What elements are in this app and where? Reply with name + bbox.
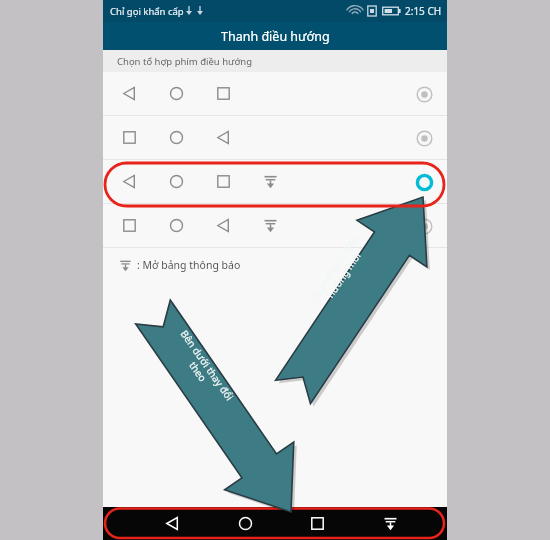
button[interactable]	[103, 116, 447, 159]
button[interactable]: Home	[228, 507, 262, 540]
button[interactable]: Recent apps	[300, 507, 334, 540]
button[interactable]: Open notifications	[373, 507, 407, 540]
staticText: Chọn tổ hợp phím điều hướng	[117, 55, 253, 68]
staticText: Chỉ gọi khẩn cấp	[110, 5, 184, 18]
staticText: 2:15 CH	[405, 4, 442, 18]
staticText: : Mở bảng thông báo	[137, 258, 241, 272]
button[interactable]	[103, 72, 447, 115]
staticText: Chọn thanh điều hướng mới	[306, 232, 371, 312]
staticText: Bên dưới thay đổi theo	[168, 327, 237, 410]
staticText: Thanh điều hướng	[221, 28, 330, 45]
button[interactable]	[103, 204, 447, 247]
button[interactable]: Back	[155, 507, 189, 540]
button[interactable]	[103, 160, 447, 203]
